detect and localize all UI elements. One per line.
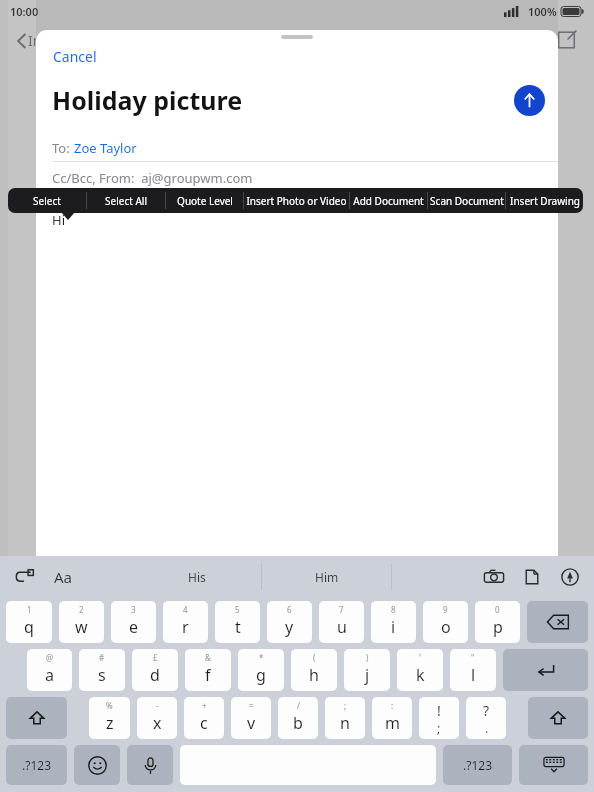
button[interactable]: Dictation	[127, 745, 173, 785]
button[interactable]: Add Document	[350, 188, 427, 213]
button[interactable]: ?	[466, 697, 506, 739]
button[interactable]: +	[184, 697, 224, 739]
staticText: 7	[339, 604, 344, 615]
button[interactable]: 7	[319, 601, 364, 643]
staticText: Cc/Bcc, From: aj@groupwm.com	[52, 169, 253, 187]
staticText: Aa	[54, 567, 73, 587]
staticText: e	[129, 616, 139, 638]
staticText: Scan Document	[430, 194, 504, 208]
staticText: d	[150, 664, 160, 686]
button[interactable]: Aa	[50, 563, 77, 591]
button[interactable]: 4	[163, 601, 208, 643]
button[interactable]: In	[14, 29, 44, 52]
button[interactable]: /	[278, 697, 318, 739]
button[interactable]: Send	[514, 85, 545, 116]
staticText: 0	[495, 604, 500, 615]
button[interactable]: To:	[36, 135, 558, 161]
staticText: w	[75, 616, 88, 638]
button[interactable]: Scan Document	[428, 188, 505, 213]
button[interactable]: (	[291, 649, 337, 691]
button[interactable]: &	[185, 649, 231, 691]
button[interactable]: 2	[59, 601, 104, 643]
staticText: b	[293, 712, 303, 734]
button[interactable]: '	[397, 649, 443, 691]
button[interactable]: -	[137, 697, 177, 739]
button[interactable]: @	[27, 649, 72, 691]
staticText: 8	[391, 604, 396, 615]
staticText: .?123	[463, 757, 493, 773]
staticText: &	[205, 652, 211, 663]
button[interactable]: 9	[423, 601, 468, 643]
button[interactable]: Return	[503, 649, 588, 691]
button[interactable]: .?123	[443, 745, 512, 785]
button[interactable]: Delete	[462, 27, 488, 53]
button[interactable]: 8	[371, 601, 416, 643]
button[interactable]: Hide keyboard	[519, 745, 588, 785]
staticText: "	[471, 652, 475, 663]
button[interactable]: ;	[325, 697, 365, 739]
staticText: '	[419, 652, 421, 663]
staticText: t	[235, 616, 241, 638]
button[interactable]: Him	[262, 556, 391, 598]
staticText: f	[205, 664, 211, 686]
button[interactable]: Quote Level	[166, 188, 243, 213]
staticText: !	[437, 701, 441, 720]
button[interactable]: 0	[475, 601, 520, 643]
button[interactable]: %	[89, 697, 130, 739]
button[interactable]: His	[132, 556, 261, 598]
button[interactable]: 1	[6, 601, 52, 643]
button[interactable]: .?123	[6, 745, 67, 785]
button[interactable]: #	[79, 649, 125, 691]
button[interactable]: Shift	[528, 697, 588, 739]
button[interactable]: 5	[215, 601, 260, 643]
button[interactable]: "	[450, 649, 496, 691]
button[interactable]: :	[372, 697, 412, 739]
button[interactable]: Select All	[87, 188, 165, 213]
staticText: 6	[287, 604, 292, 615]
staticText: ?	[483, 701, 490, 720]
staticText: #	[99, 652, 105, 663]
button[interactable]: Hi	[36, 211, 558, 556]
staticText: Insert Drawing	[510, 194, 580, 208]
button[interactable]: 6	[267, 601, 312, 643]
button[interactable]: Camera	[482, 565, 506, 589]
staticText: Holiday picture	[52, 83, 243, 117]
button[interactable]: £	[132, 649, 178, 691]
button[interactable]: Insert Drawing	[506, 188, 583, 213]
staticText: £	[153, 652, 158, 663]
button[interactable]: Undo	[12, 564, 38, 590]
staticText: s	[98, 664, 106, 686]
button[interactable]: *	[238, 649, 284, 691]
button[interactable]: Select	[8, 188, 86, 213]
staticText: u	[337, 616, 347, 638]
button[interactable]: Move to folder	[508, 27, 534, 53]
button[interactable]: Cc/Bcc, From: aj@groupwm.com	[36, 162, 558, 194]
staticText: o	[441, 616, 451, 638]
button[interactable]: Backspace	[527, 601, 588, 643]
button[interactable]: )	[344, 649, 390, 691]
staticText: /	[297, 700, 300, 711]
button[interactable]: 3	[111, 601, 156, 643]
staticText: Him	[315, 569, 339, 585]
staticText: (	[313, 652, 316, 663]
staticText: 3	[131, 604, 136, 615]
staticText: n	[340, 712, 350, 734]
button[interactable]: Emoji	[74, 745, 120, 785]
staticText: .	[485, 720, 489, 736]
staticText: 100%	[528, 4, 557, 19]
button[interactable]: !	[419, 697, 459, 739]
button[interactable]: Compose	[554, 27, 580, 53]
button[interactable]: =	[231, 697, 271, 739]
button[interactable]: Insert document	[520, 565, 544, 589]
button[interactable]: Cancel	[48, 42, 102, 71]
staticText: 1	[27, 604, 32, 615]
button[interactable]: Markup	[558, 565, 582, 589]
staticText: z	[106, 712, 114, 734]
button[interactable]: Insert Photo or Video	[244, 188, 349, 213]
staticText: )	[366, 652, 369, 663]
button[interactable]: Shift	[6, 697, 67, 739]
staticText: Quote Level	[177, 194, 233, 208]
staticText: His	[188, 569, 206, 585]
staticText: Hi	[52, 211, 65, 229]
